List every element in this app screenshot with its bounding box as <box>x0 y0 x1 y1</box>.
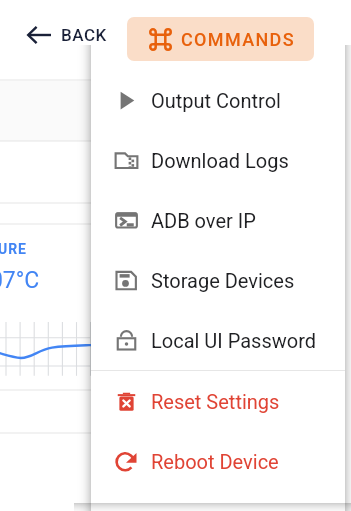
staticText: COMMANDS <box>181 29 295 50</box>
button[interactable]: Storage Devices <box>91 250 345 310</box>
staticText: Storage Devices <box>151 269 295 292</box>
staticText: ADB over IP <box>151 209 256 232</box>
button[interactable]: Reboot Device <box>91 431 345 491</box>
staticText: 107°C <box>0 267 40 294</box>
button[interactable]: Local UI Password <box>91 310 345 370</box>
button[interactable]: Download Logs <box>91 130 345 190</box>
staticText: BACK <box>61 25 107 45</box>
button[interactable]: ADB over IP <box>91 190 345 250</box>
button[interactable]: BACK <box>24 22 110 48</box>
staticText: Reset Settings <box>151 390 280 413</box>
staticText: Output Control <box>151 89 281 112</box>
staticText: TEMPERATURE <box>0 241 27 257</box>
button[interactable]: COMMANDS <box>127 17 314 61</box>
staticText: Reboot Device <box>151 450 279 473</box>
staticText: Local UI Password <box>151 329 317 352</box>
staticText: Download Logs <box>151 149 289 172</box>
button[interactable]: Reset Settings <box>91 371 345 431</box>
button[interactable]: Output Control <box>91 70 345 130</box>
